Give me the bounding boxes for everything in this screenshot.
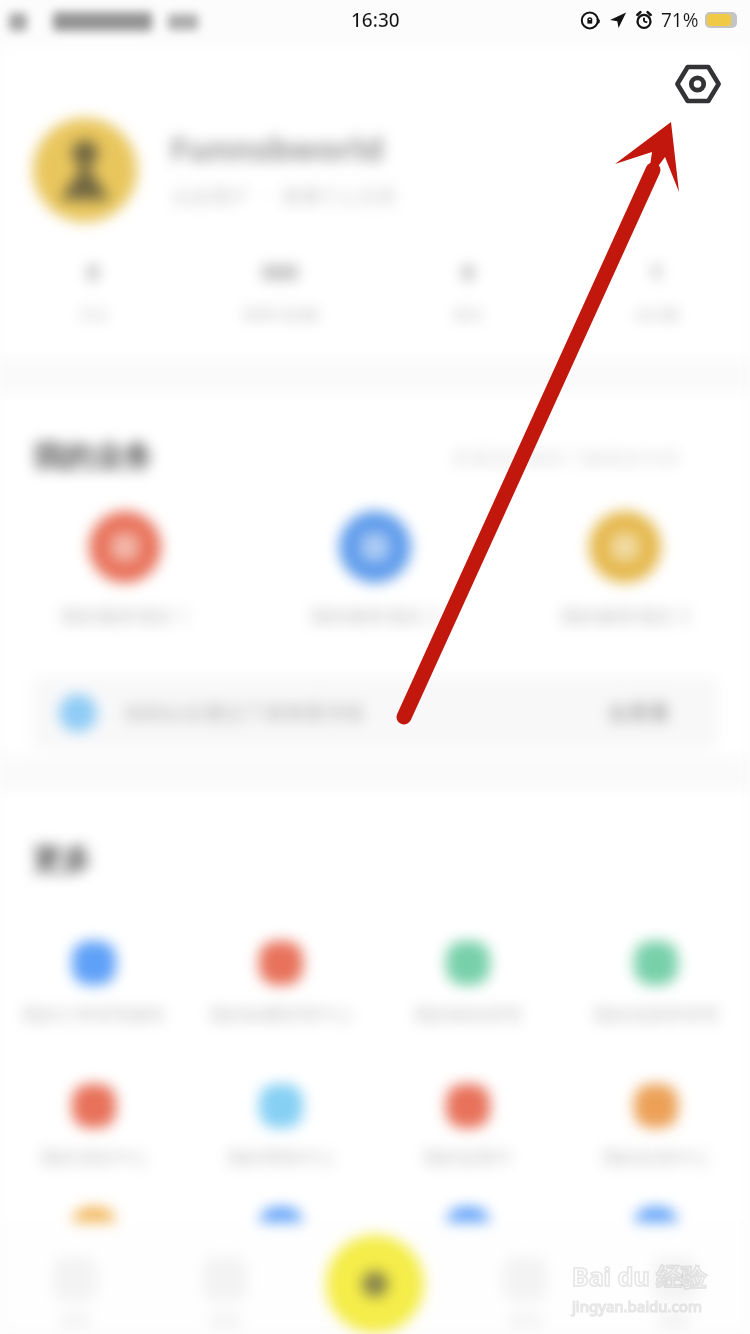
button[interactable]: 查看更多服务了解更多内容 <box>452 447 680 471</box>
button[interactable]: Create <box>326 1235 424 1333</box>
button[interactable]: 我的反馈中心 <box>562 1084 750 1170</box>
staticText: 我的钱包管理 <box>414 1004 522 1027</box>
staticText: 更多 <box>32 841 92 879</box>
staticText: 我的帮助中心 <box>227 1147 335 1170</box>
staticText: 我的 <box>659 1311 691 1331</box>
button[interactable]: 8 <box>374 258 562 325</box>
button[interactable]: 我的订单管理服务 <box>0 941 187 1027</box>
button[interactable]: 发现 <box>450 1257 600 1331</box>
staticText: 8 <box>462 258 475 287</box>
button[interactable]: 我的优惠券管理 <box>562 941 750 1027</box>
staticText: 我的优惠券管理 <box>593 1004 719 1027</box>
staticText: 我的服务中心 <box>227 1270 335 1293</box>
button[interactable]: 首页 <box>0 1257 150 1331</box>
staticText: 1 <box>650 258 663 287</box>
staticText: 71% <box>661 7 699 33</box>
staticText: 我的服务项目 1 <box>60 603 190 629</box>
staticText: 去查看 <box>607 700 670 726</box>
button[interactable]: 我的钱包管理 <box>374 941 562 1027</box>
button[interactable]: 我的帮助中心 <box>187 1084 374 1170</box>
button[interactable]: 认证用户 · 查看个人主页 <box>172 183 397 209</box>
button[interactable]: 我的服务项目 2 <box>250 511 500 629</box>
staticText: 你的认证通过了请查看详情 <box>124 701 364 726</box>
staticText: 我的服务中心 <box>414 1270 522 1293</box>
button[interactable]: 1 <box>562 258 750 325</box>
button[interactable]: Settings <box>674 60 722 108</box>
button[interactable]: 我的服务项目 1 <box>0 511 250 629</box>
staticText: jingyan.baidu.com <box>572 1296 702 1316</box>
staticText: 我的服务中心 <box>602 1270 710 1293</box>
button[interactable]: 我的服务中心 <box>187 1207 374 1293</box>
button[interactable] <box>33 118 137 222</box>
button[interactable]: 我的收藏管理中心 <box>187 941 374 1027</box>
staticText: 我的反馈中心 <box>602 1147 710 1170</box>
button[interactable]: 消息 <box>150 1257 300 1331</box>
staticText: 我的订单管理服务 <box>22 1004 166 1027</box>
button[interactable]: 我的服务中心 <box>374 1207 562 1293</box>
staticText: 16:30 <box>351 7 400 33</box>
button[interactable]: 我的设置中 <box>374 1084 562 1170</box>
staticText: 我的消息中心 <box>40 1147 148 1170</box>
staticText: 8 <box>87 258 100 287</box>
staticText: 我的服务项目 2 <box>310 603 440 629</box>
button[interactable]: 我的服务中心 <box>0 1207 187 1293</box>
staticText: 我的业务 <box>33 438 153 476</box>
staticText: 我的设置中 <box>423 1147 513 1170</box>
button[interactable]: Funnsbworld <box>170 126 384 171</box>
button[interactable]: 我的服务项目 3 <box>500 511 750 629</box>
staticText: 我的服务中心 <box>40 1270 148 1293</box>
button[interactable]: 我的服务中心 <box>562 1207 750 1293</box>
button[interactable]: 我的 <box>600 1257 750 1331</box>
button[interactable]: 我的消息中心 <box>0 1084 187 1170</box>
button[interactable]: 你的认证通过了请查看详情 <box>59 677 670 749</box>
staticText: 我的服务项目 3 <box>560 603 690 629</box>
button[interactable]: 888 <box>187 258 374 325</box>
staticText: 888 <box>262 258 299 287</box>
staticText: 我的收藏管理中心 <box>209 1004 353 1027</box>
staticText: Bai du 经验 <box>572 1259 707 1293</box>
button[interactable]: 8 <box>0 258 187 325</box>
